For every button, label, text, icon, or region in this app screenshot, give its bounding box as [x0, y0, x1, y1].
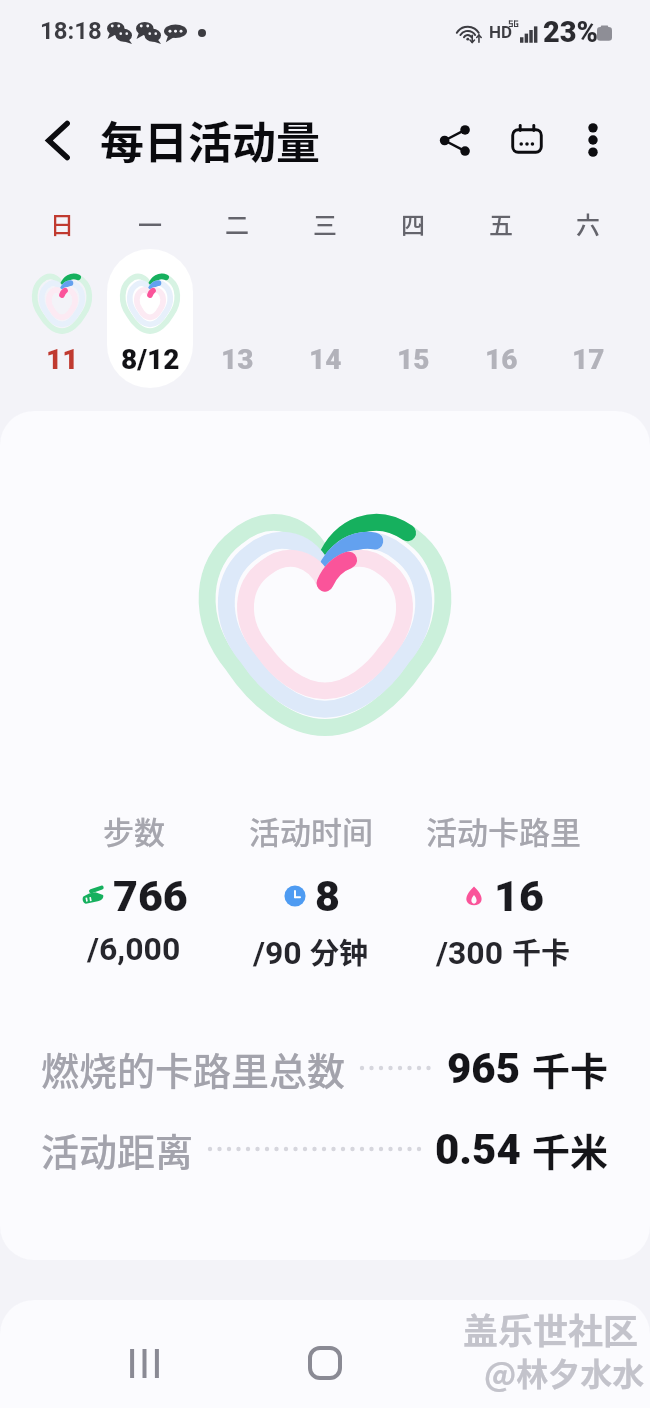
button[interactable]: Share [424, 109, 486, 171]
staticText: 步数 [103, 808, 165, 853]
button[interactable]: Recents [100, 1319, 188, 1407]
button[interactable]: Home [281, 1319, 369, 1407]
button[interactable]: 活动时间 [211, 808, 411, 972]
staticText: 三 [313, 206, 337, 241]
staticText: 一 [138, 206, 162, 241]
staticText: /6,000 [87, 930, 181, 968]
button[interactable]: 一 [107, 206, 193, 388]
button[interactable]: 五 [458, 206, 544, 388]
button[interactable]: 四 [370, 206, 456, 388]
button[interactable]: 燃烧的卡路里总数 [0, 1032, 650, 1104]
staticText: 0.54 [435, 1125, 521, 1174]
staticText: 16 [494, 871, 544, 921]
staticText: 千卡 [512, 930, 571, 972]
staticText: 日 [50, 206, 74, 241]
staticText: 14 [309, 343, 342, 376]
button[interactable]: 活动距离 [0, 1113, 650, 1185]
staticText: /90 [253, 934, 310, 972]
staticText: 23% [543, 15, 599, 49]
staticText: 六 [576, 206, 600, 241]
staticText: 965 [447, 1044, 521, 1093]
button[interactable]: 三 [282, 206, 368, 388]
staticText: 13 [221, 343, 254, 376]
button[interactable]: 步数 [34, 808, 234, 968]
button[interactable]: 六 [545, 206, 631, 388]
button[interactable]: Calendar [496, 109, 558, 171]
staticText: HD [489, 22, 513, 42]
staticText: 766 [113, 871, 188, 921]
button[interactable]: 日 [19, 206, 105, 388]
button[interactable]: More options [562, 109, 624, 171]
button[interactable]: 二 [194, 206, 280, 388]
staticText: 8 [315, 871, 340, 921]
button[interactable]: Back [23, 106, 91, 174]
staticText: 千卡 [532, 1041, 609, 1096]
staticText: /300 [436, 934, 512, 972]
button[interactable]: Back [462, 1319, 550, 1407]
staticText: 活动卡路里 [426, 808, 581, 853]
staticText: 活动距离 [41, 1122, 194, 1177]
staticText: 8/12 [121, 343, 180, 376]
staticText: 四 [401, 206, 425, 241]
staticText: @林夕水水 [484, 1349, 645, 1395]
staticText: 盖乐世社区 [463, 1303, 639, 1354]
staticText: 活动时间 [249, 808, 373, 853]
staticText: 16 [485, 343, 518, 376]
staticText: 11 [46, 343, 79, 376]
staticText: 二 [225, 206, 249, 241]
button[interactable]: 活动卡路里 [403, 808, 603, 972]
staticText: 五 [489, 206, 513, 241]
staticText: 千米 [532, 1122, 609, 1177]
staticText: 18:18 [40, 17, 102, 45]
staticText: 燃烧的卡路里总数 [41, 1041, 346, 1096]
staticText: 分钟 [310, 930, 369, 972]
staticText: 每日活动量 [100, 108, 320, 172]
staticText: 17 [572, 343, 605, 376]
staticText: 15 [397, 343, 430, 376]
